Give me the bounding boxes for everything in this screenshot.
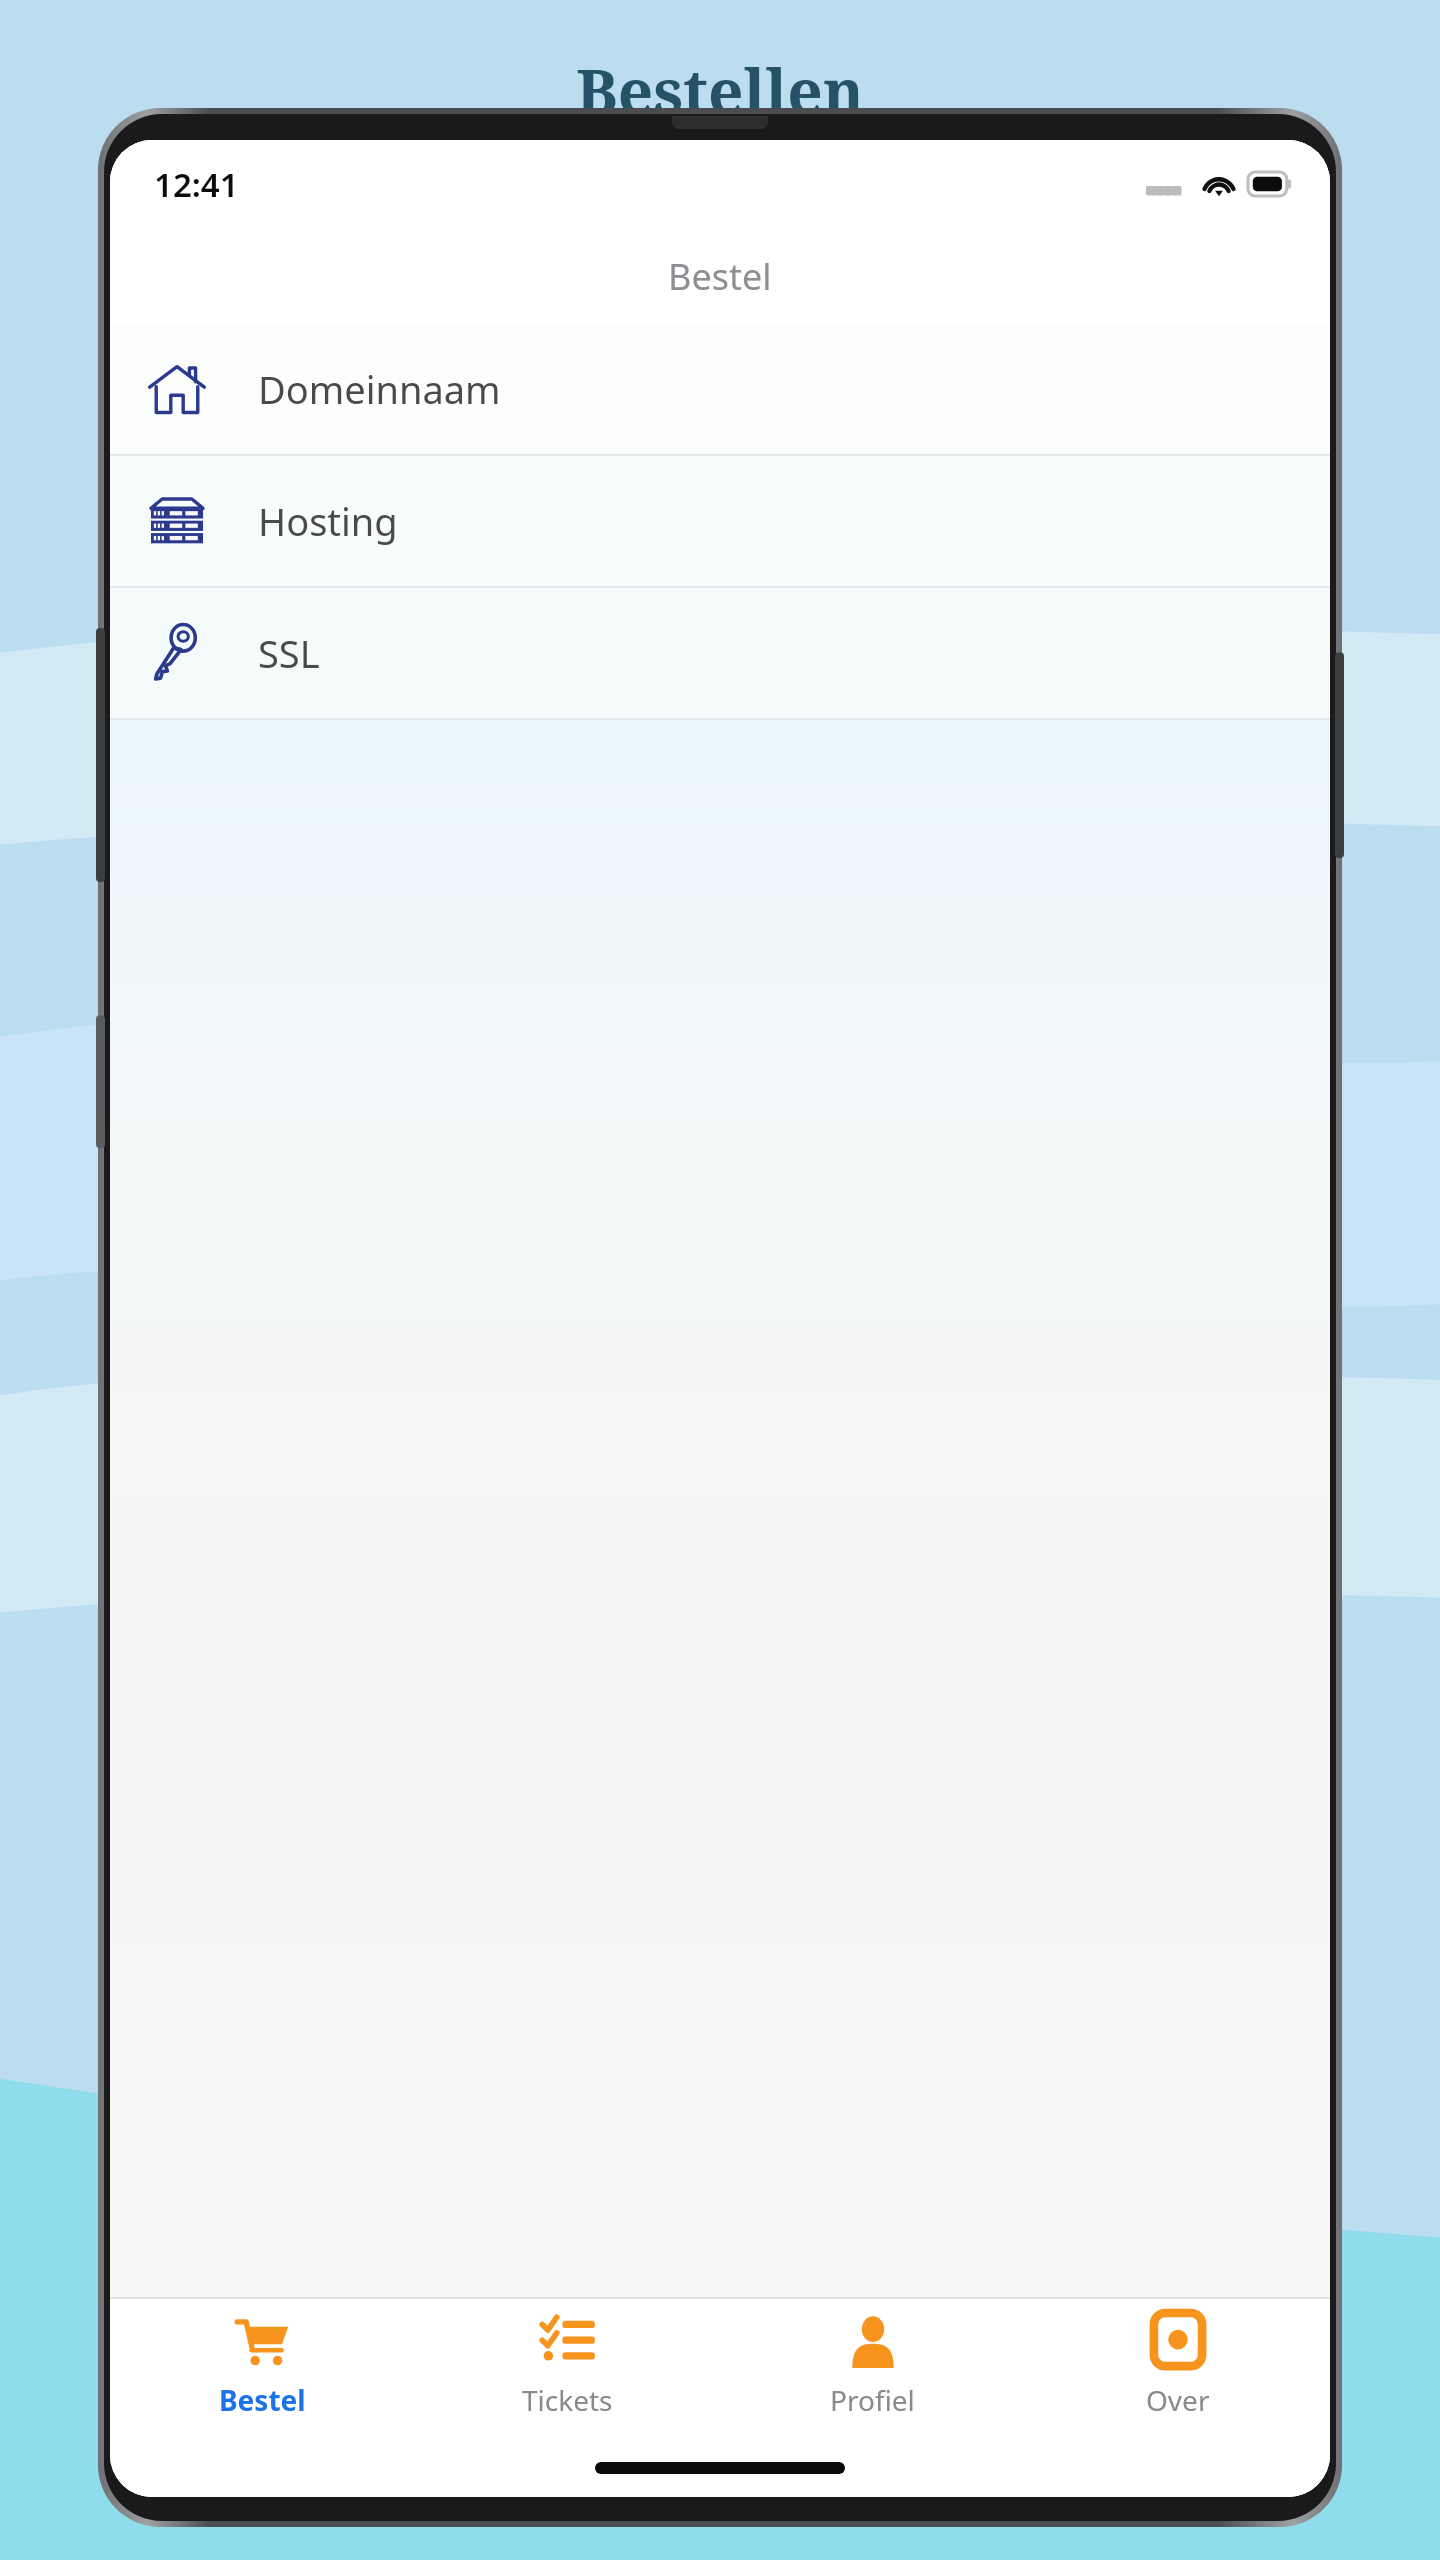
button[interactable]: Hosting bbox=[110, 456, 1330, 586]
staticText: Bestellen bbox=[576, 48, 864, 132]
staticText: Tickets bbox=[522, 2381, 613, 2419]
button[interactable]: Tickets bbox=[415, 2299, 720, 2439]
button[interactable]: SSL bbox=[110, 588, 1330, 718]
staticText: Profiel bbox=[830, 2381, 915, 2419]
button[interactable]: Profiel bbox=[720, 2299, 1025, 2439]
staticText: Bestel bbox=[219, 2381, 306, 2419]
staticText: 12:41 bbox=[154, 162, 239, 207]
staticText: SSL bbox=[258, 627, 320, 679]
staticText: Hosting bbox=[258, 495, 398, 547]
button[interactable]: Over bbox=[1025, 2299, 1330, 2439]
staticText: Over bbox=[1146, 2381, 1210, 2419]
staticText: Domeinnaam bbox=[258, 363, 501, 415]
button[interactable]: Bestel bbox=[110, 2299, 415, 2439]
button[interactable]: Domeinnaam bbox=[110, 324, 1330, 454]
staticText: Bestel bbox=[668, 252, 772, 301]
